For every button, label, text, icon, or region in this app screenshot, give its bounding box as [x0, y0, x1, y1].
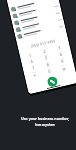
staticText: JKL [46, 61, 49, 63]
staticText: 4 [30, 59, 34, 65]
staticText: # [62, 66, 67, 73]
button[interactable]: 8 [40, 61, 56, 71]
button[interactable]: 4 [24, 57, 40, 67]
button[interactable]: # [56, 64, 72, 74]
staticText: from anywhere [35, 123, 55, 127]
button[interactable]: 5 [38, 54, 55, 64]
staticText: 9 [61, 58, 65, 65]
staticText: 1 [28, 53, 33, 59]
staticText: PQRS [32, 71, 37, 73]
staticText: 6 [59, 52, 63, 58]
button[interactable] [15, 22, 66, 41]
button[interactable]: 9 [55, 57, 71, 67]
button[interactable]: 6 [53, 50, 69, 61]
button[interactable]: * [27, 71, 43, 81]
button[interactable] [11, 9, 63, 27]
staticText: 2 [43, 48, 47, 55]
staticText: 5 [44, 55, 49, 62]
staticText: 3 [57, 45, 62, 51]
button[interactable]: 0 [42, 67, 58, 78]
staticText: ABC [44, 54, 48, 56]
button[interactable]: 3 [51, 43, 68, 54]
staticText: MNO [59, 57, 64, 59]
staticText: DEF [59, 50, 63, 52]
button[interactable] [8, 0, 59, 14]
staticText: 7 [31, 65, 36, 72]
staticText: * [33, 73, 37, 80]
button[interactable] [10, 2, 61, 20]
button[interactable]: 1 [22, 50, 38, 61]
staticText: 8 [46, 62, 50, 68]
button[interactable]: 7 [25, 64, 42, 74]
staticText: Use your business number, [21, 116, 69, 121]
button[interactable] [13, 16, 64, 34]
button[interactable]: Call [46, 76, 58, 88]
staticText: WXYZ [61, 64, 66, 66]
staticText: (555) 012-3456 [18, 35, 68, 52]
staticText: GHI [31, 64, 35, 66]
button[interactable]: 2 [37, 47, 53, 57]
staticText: 0 [48, 69, 52, 75]
staticText: TUV [47, 68, 51, 69]
